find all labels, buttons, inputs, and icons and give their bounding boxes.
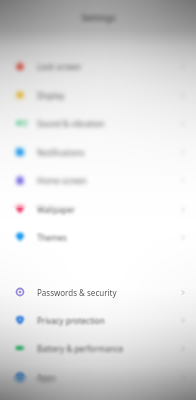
button[interactable]: Wallpaper xyxy=(0,195,196,223)
button[interactable]: Notifications xyxy=(0,138,196,166)
button[interactable]: Privacy protection xyxy=(0,306,196,334)
button[interactable]: Sound & vibration xyxy=(0,109,196,137)
button[interactable]: Privacy protection xyxy=(0,306,196,334)
button[interactable]: Battery & performance xyxy=(0,334,196,362)
button[interactable]: Display xyxy=(0,81,196,109)
button[interactable]: Passwords & security xyxy=(0,278,196,306)
button[interactable]: Apps xyxy=(0,363,196,391)
button[interactable]: Lock screen xyxy=(0,52,196,80)
button[interactable]: Lock screen xyxy=(0,52,196,80)
button[interactable]: Sound & vibration xyxy=(0,109,196,137)
button[interactable]: Battery & performance xyxy=(0,334,196,362)
button[interactable]: Sound & vibration xyxy=(0,109,196,137)
button[interactable]: Apps xyxy=(0,363,196,391)
button[interactable]: Home screen xyxy=(0,166,196,194)
button[interactable]: Lock screen xyxy=(0,52,196,80)
button[interactable]: Display xyxy=(0,81,196,109)
button[interactable]: Display xyxy=(0,81,196,109)
button[interactable]: Apps xyxy=(0,363,196,391)
button[interactable]: Display xyxy=(0,81,196,109)
button[interactable]: Notifications xyxy=(0,138,196,166)
button[interactable]: Apps xyxy=(0,363,196,391)
button[interactable]: Sound & vibration xyxy=(0,109,196,137)
button[interactable]: Wallpaper xyxy=(0,195,196,223)
button[interactable]: Display xyxy=(0,81,196,109)
button[interactable]: Apps xyxy=(0,363,196,391)
button[interactable]: Battery & performance xyxy=(0,334,196,362)
button[interactable]: Home screen xyxy=(0,166,196,194)
button[interactable]: Themes xyxy=(0,223,196,251)
button[interactable]: Privacy protection xyxy=(0,306,196,334)
button[interactable]: Home screen xyxy=(0,166,196,194)
button[interactable]: Display xyxy=(0,81,196,109)
button[interactable]: Notifications xyxy=(0,138,196,166)
button[interactable]: Battery & performance xyxy=(0,334,196,362)
button[interactable]: Lock screen xyxy=(0,52,196,80)
button[interactable]: Display xyxy=(0,81,196,109)
button[interactable]: Notifications xyxy=(0,138,196,166)
button[interactable]: Battery & performance xyxy=(0,334,196,362)
button[interactable]: Notifications xyxy=(0,138,196,166)
button[interactable]: Wallpaper xyxy=(0,195,196,223)
button[interactable]: Passwords & security xyxy=(0,278,196,306)
button[interactable]: Apps xyxy=(0,363,196,391)
button[interactable]: Privacy protection xyxy=(0,306,196,334)
button[interactable]: Apps xyxy=(0,363,196,391)
button[interactable]: Home screen xyxy=(0,166,196,194)
button[interactable]: Apps xyxy=(0,363,196,391)
button[interactable]: Battery & performance xyxy=(0,334,196,362)
button[interactable]: Home screen xyxy=(0,166,196,194)
button[interactable]: Wallpaper xyxy=(0,195,196,223)
button[interactable]: Lock screen xyxy=(0,52,196,80)
button[interactable]: Lock screen xyxy=(0,52,196,80)
button[interactable]: Apps xyxy=(0,363,196,391)
button[interactable]: Wallpaper xyxy=(0,195,196,223)
button[interactable]: Notifications xyxy=(0,138,196,166)
button[interactable]: Passwords & security xyxy=(0,278,196,306)
button[interactable]: Lock screen xyxy=(0,52,196,80)
button[interactable]: Passwords & security xyxy=(0,278,196,306)
button[interactable]: Display xyxy=(0,81,196,109)
button[interactable]: Wallpaper xyxy=(0,195,196,223)
button[interactable]: Wallpaper xyxy=(0,195,196,223)
button[interactable]: Privacy protection xyxy=(0,306,196,334)
button[interactable]: Battery & performance xyxy=(0,334,196,362)
button[interactable]: Apps xyxy=(0,363,196,391)
button[interactable]: Privacy protection xyxy=(0,306,196,334)
button[interactable]: Apps xyxy=(0,363,196,391)
button[interactable]: Themes xyxy=(0,223,196,251)
button[interactable]: Lock screen xyxy=(0,52,196,80)
button[interactable]: Display xyxy=(0,81,196,109)
button[interactable]: Apps xyxy=(0,363,196,391)
button[interactable]: Sound & vibration xyxy=(0,109,196,137)
button[interactable]: Themes xyxy=(0,223,196,251)
button[interactable]: Lock screen xyxy=(0,52,196,80)
button[interactable]: Lock screen xyxy=(0,52,196,80)
button[interactable]: Themes xyxy=(0,223,196,251)
button[interactable]: Sound & vibration xyxy=(0,109,196,137)
button[interactable]: Lock screen xyxy=(0,52,196,80)
button[interactable]: Apps xyxy=(0,363,196,391)
button[interactable]: Apps xyxy=(0,363,196,391)
button[interactable]: Home screen xyxy=(0,166,196,194)
button[interactable]: Privacy protection xyxy=(0,306,196,334)
button[interactable]: Home screen xyxy=(0,166,196,194)
button[interactable]: Home screen xyxy=(0,166,196,194)
button[interactable]: Apps xyxy=(0,363,196,391)
button[interactable]: Home screen xyxy=(0,166,196,194)
button[interactable]: Notifications xyxy=(0,138,196,166)
button[interactable]: Battery & performance xyxy=(0,334,196,362)
button[interactable]: Battery & performance xyxy=(0,334,196,362)
button[interactable]: Lock screen xyxy=(0,52,196,80)
button[interactable]: Passwords & security xyxy=(0,278,196,306)
button[interactable]: Display xyxy=(0,81,196,109)
button[interactable]: Home screen xyxy=(0,166,196,194)
button[interactable]: Notifications xyxy=(0,138,196,166)
button[interactable]: Battery & performance xyxy=(0,334,196,362)
button[interactable]: Battery & performance xyxy=(0,334,196,362)
button[interactable]: Apps xyxy=(0,363,196,391)
button[interactable]: Sound & vibration xyxy=(0,109,196,137)
button[interactable]: Privacy protection xyxy=(0,306,196,334)
button[interactable]: Sound & vibration xyxy=(0,109,196,137)
button[interactable]: Lock screen xyxy=(0,52,196,80)
